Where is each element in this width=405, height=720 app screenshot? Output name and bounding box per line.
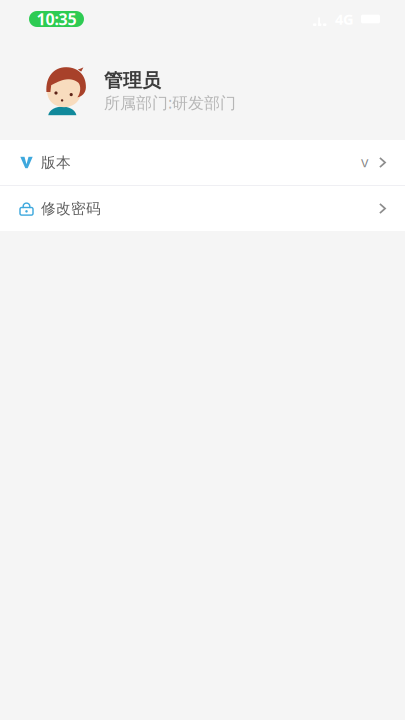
staticText: v [361, 152, 368, 171]
staticText: 修改密码 [41, 199, 101, 217]
staticText: 版本 [41, 153, 71, 171]
staticText: 10:35 [36, 8, 76, 30]
button[interactable]: 版本 [0, 140, 405, 185]
staticText: 4G [335, 9, 354, 29]
staticText: 管理员 [104, 69, 161, 92]
button[interactable]: 修改密码 [0, 186, 405, 231]
staticText: 所属部门:研发部门 [104, 92, 236, 113]
